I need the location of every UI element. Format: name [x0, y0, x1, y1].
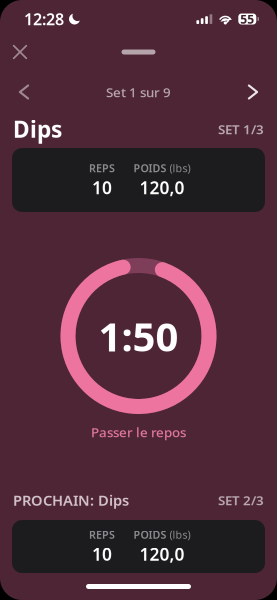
staticText: 120,0	[139, 543, 184, 566]
staticText: POIDS	[133, 161, 166, 175]
staticText: Set 1 sur 9	[106, 83, 171, 101]
staticText: 10	[92, 176, 112, 199]
staticText: Dips	[13, 114, 62, 144]
button[interactable]: Passer le repos	[73, 421, 204, 443]
staticText: REPS	[89, 527, 115, 542]
staticText: 55	[240, 11, 254, 27]
button[interactable]: Close	[6, 38, 34, 66]
staticText: (lbs)	[169, 161, 190, 175]
staticText: POIDS	[133, 527, 166, 542]
staticText: REPS	[89, 161, 115, 175]
staticText: SET 2/3	[218, 491, 264, 509]
staticText: 120,0	[139, 176, 184, 199]
staticText: 1:50	[98, 309, 178, 362]
staticText: PROCHAIN: Dips	[13, 490, 129, 510]
button[interactable]: Next set	[238, 77, 268, 107]
staticText: 12:28	[24, 8, 64, 30]
button[interactable]: Previous set	[9, 77, 39, 107]
staticText: (lbs)	[169, 527, 190, 542]
staticText: 10	[92, 543, 112, 566]
staticText: Passer le repos	[91, 423, 186, 441]
staticText: SET 1/3	[218, 120, 264, 138]
